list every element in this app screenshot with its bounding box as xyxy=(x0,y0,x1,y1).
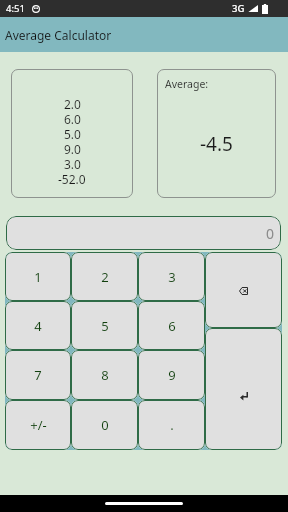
button[interactable]: +/- xyxy=(5,400,71,450)
staticText: 5 xyxy=(101,317,109,335)
staticText: 8 xyxy=(101,366,109,384)
button[interactable]: 4 xyxy=(5,301,71,350)
button[interactable]: . xyxy=(138,400,205,450)
staticText: 9 xyxy=(168,366,176,384)
button[interactable]: 6 xyxy=(138,301,205,350)
staticText: 3 xyxy=(168,268,176,286)
staticText: 0 xyxy=(101,416,109,434)
staticText: 3G xyxy=(232,2,245,15)
button[interactable]: Enter xyxy=(205,328,282,450)
staticText: -4.5 xyxy=(200,131,233,157)
staticText: Average Calculator xyxy=(5,27,112,43)
button[interactable]: 0 xyxy=(71,400,138,450)
staticText: 4:51 xyxy=(6,2,25,15)
staticText: 3.0 xyxy=(64,156,81,171)
button[interactable]: Backspace xyxy=(205,252,282,328)
button[interactable]: 3 xyxy=(138,252,205,301)
staticText: 6.0 xyxy=(64,111,81,126)
staticText: 2 xyxy=(101,268,109,286)
staticText: 1 xyxy=(34,268,42,286)
staticText: 4 xyxy=(34,317,42,335)
staticText: 0 xyxy=(266,224,275,243)
staticText: 6 xyxy=(168,317,176,335)
staticText: +/- xyxy=(30,416,47,434)
button[interactable]: 1 xyxy=(5,252,71,301)
staticText: . xyxy=(170,416,174,434)
staticText: 2.0 xyxy=(64,96,81,111)
staticText: Average: xyxy=(165,77,209,91)
button[interactable]: 2 xyxy=(71,252,138,301)
button[interactable]: 8 xyxy=(71,350,138,400)
staticText: -52.0 xyxy=(58,171,86,186)
button[interactable]: 9 xyxy=(138,350,205,400)
button[interactable]: 5 xyxy=(71,301,138,350)
staticText: 9.0 xyxy=(64,141,81,156)
button[interactable]: 7 xyxy=(5,350,71,400)
staticText: 7 xyxy=(34,366,42,384)
staticText: 5.0 xyxy=(64,126,81,141)
